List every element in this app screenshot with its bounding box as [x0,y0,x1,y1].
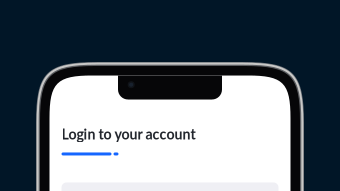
staticText: Login to your account [61,125,195,142]
